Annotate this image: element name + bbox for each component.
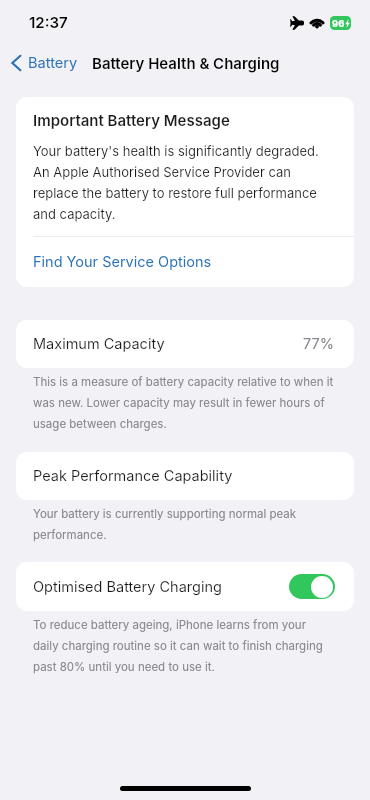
other: Airplane mode on [291,17,304,29]
staticText: Your battery is currently supporting nor… [33,507,297,542]
button[interactable]: Find Your Service Options [16,237,354,287]
button[interactable]: Maximum Capacity [16,320,354,368]
staticText: 96 [332,18,345,29]
other: Wi-Fi connected [309,16,325,30]
staticText: Maximum Capacity [33,335,165,353]
staticText: Optimised Battery Charging [33,578,222,596]
button[interactable]: Peak Performance Capability [16,452,354,500]
button[interactable]: Battery [10,53,78,73]
staticText: Find Your Service Options [33,253,212,271]
staticText: Battery [28,54,78,72]
staticText: To reduce battery ageing, iPhone learns … [33,618,323,674]
staticText: Battery Health & Charging [92,54,280,72]
staticText: 12:37 [29,13,68,31]
staticText: Important Battery Message [33,111,230,129]
staticText: Peak Performance Capability [33,467,233,485]
button[interactable]: Optimised Battery Charging, on [289,574,335,599]
staticText: 77% [303,335,334,353]
staticText: Your battery's health is significantly d… [33,143,319,222]
staticText: This is a measure of battery capacity re… [33,375,334,431]
